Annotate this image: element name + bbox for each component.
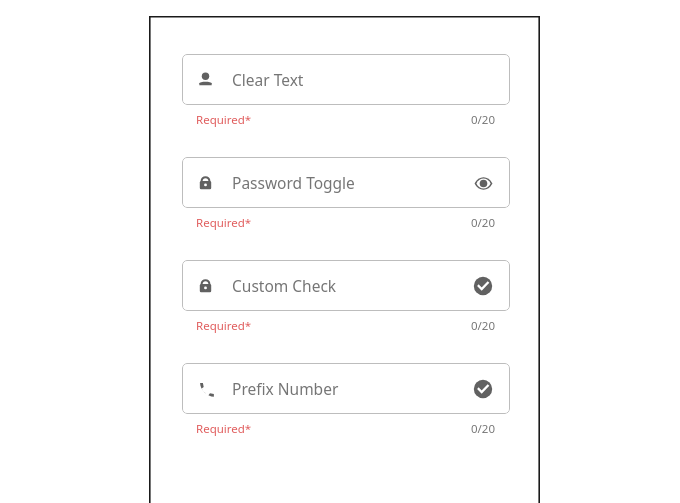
staticText: Password Toggle	[232, 172, 355, 193]
button[interactable]: Clear Text	[182, 54, 510, 105]
button[interactable]: Valid	[470, 273, 496, 299]
staticText: Prefix Number	[232, 378, 339, 399]
staticText: Required*	[196, 215, 252, 231]
staticText: Required*	[196, 112, 252, 128]
staticText: Required*	[196, 421, 252, 437]
button[interactable]: Valid	[470, 376, 496, 402]
staticText: 0/20	[470, 215, 495, 231]
staticText: 0/20	[470, 112, 495, 128]
staticText: Custom Check	[232, 275, 337, 296]
button[interactable]: Toggle password visibility	[470, 170, 496, 196]
staticText: 0/20	[470, 318, 495, 334]
staticText: Required*	[196, 318, 252, 334]
button[interactable]: Prefix Number	[182, 363, 510, 414]
button[interactable]: Password Toggle	[182, 157, 510, 208]
staticText: Clear Text	[232, 69, 304, 90]
button[interactable]: Custom Check	[182, 260, 510, 311]
staticText: 0/20	[470, 421, 495, 437]
